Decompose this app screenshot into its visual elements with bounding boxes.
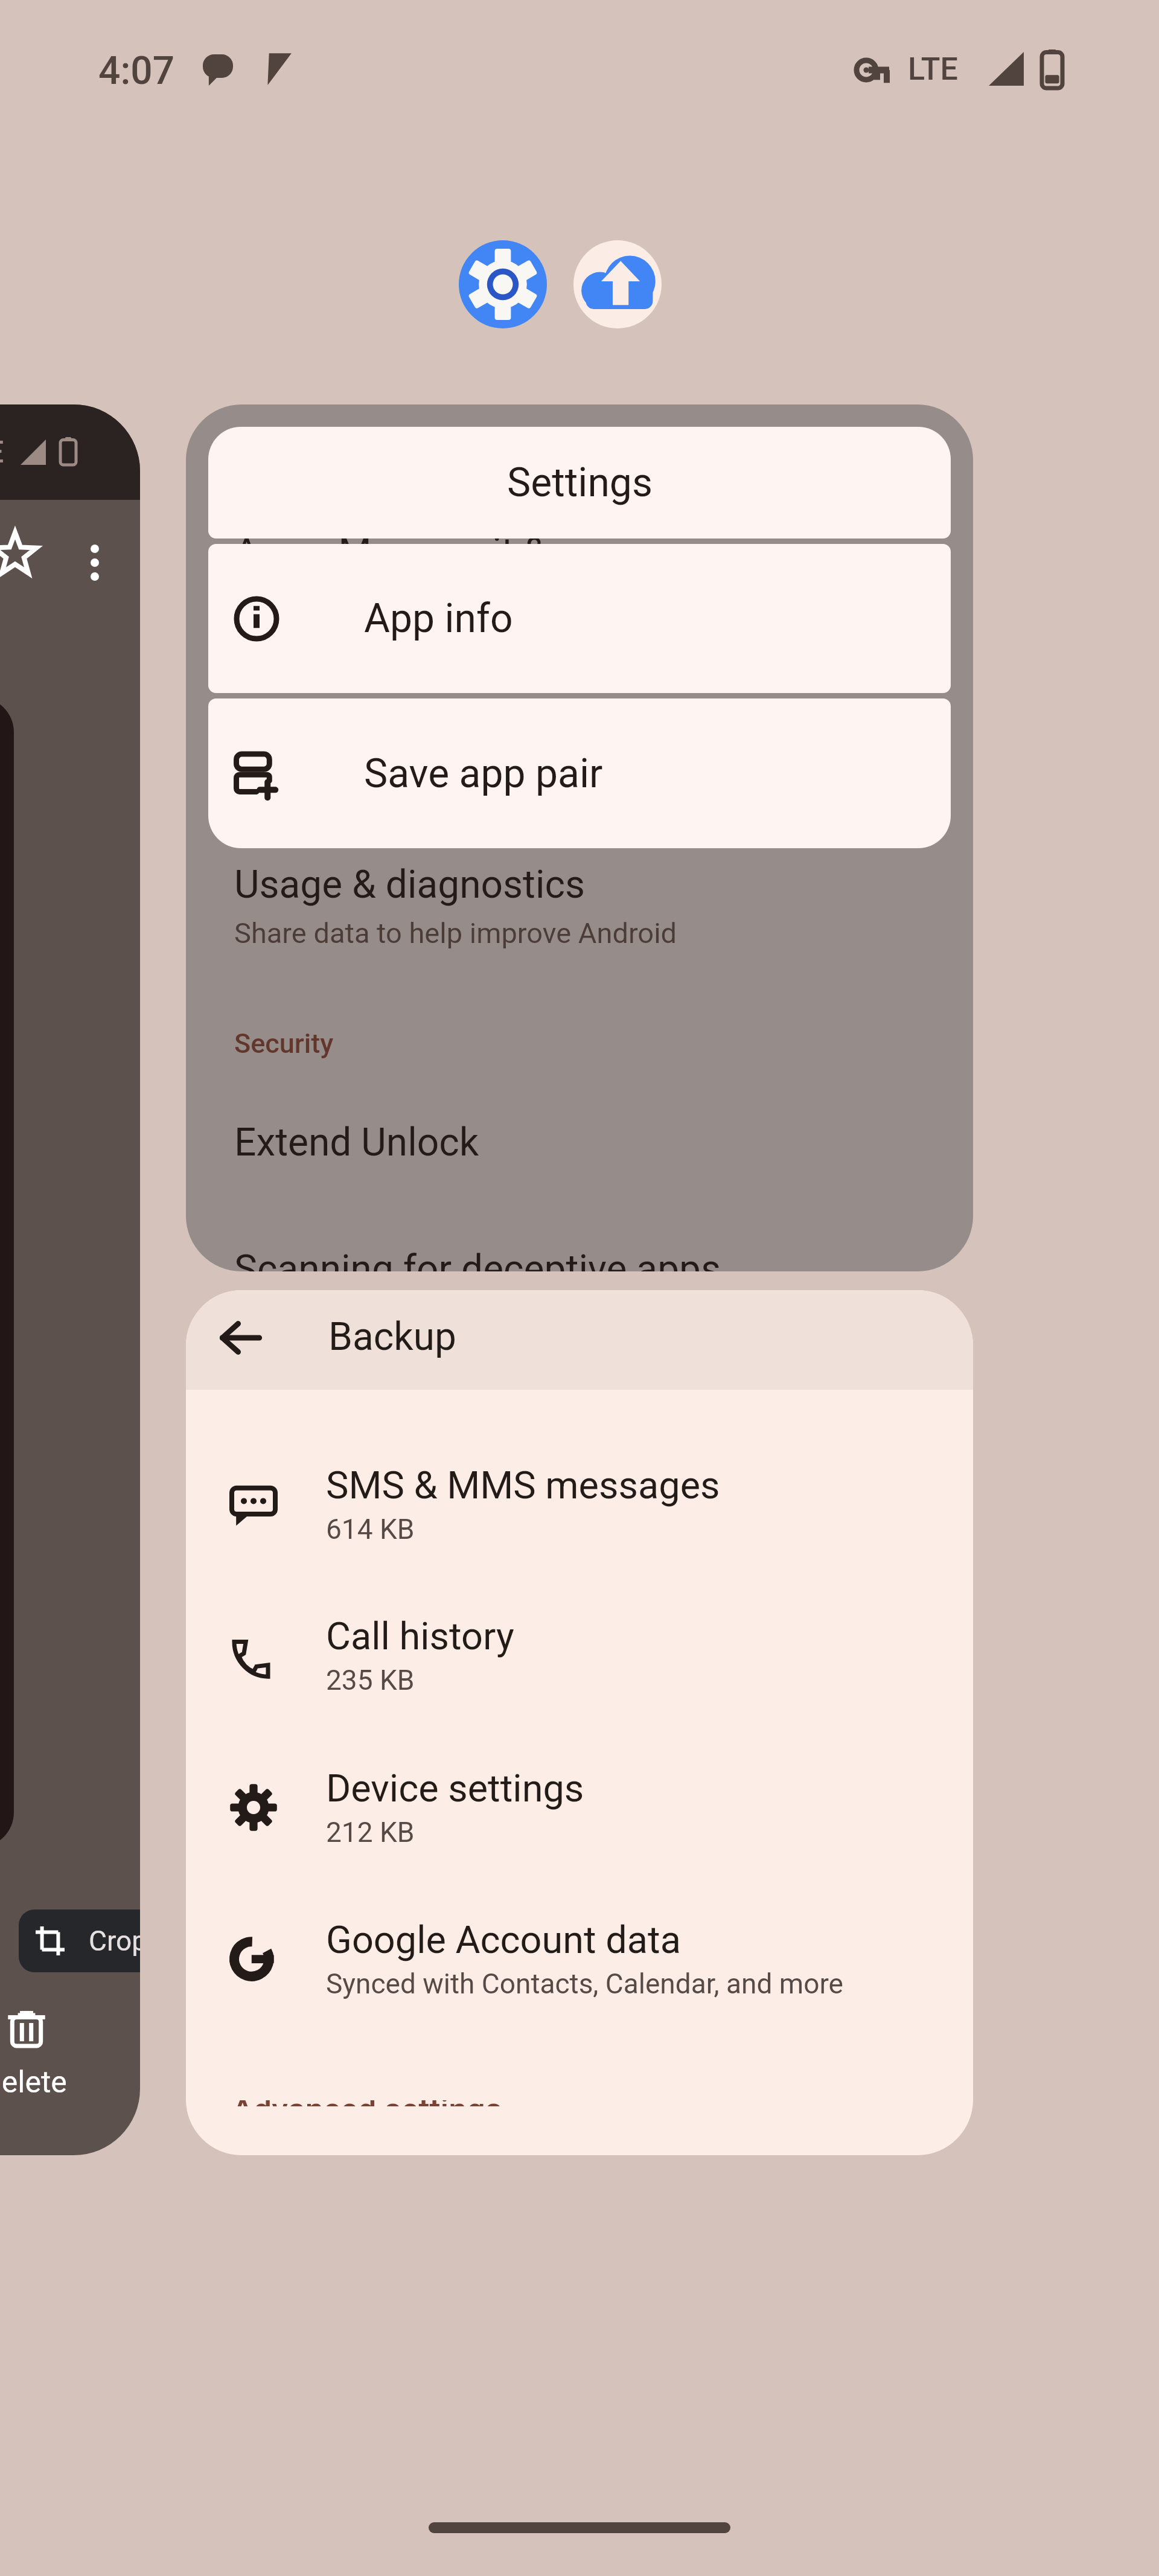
staticText: 212 KB bbox=[326, 1816, 415, 1849]
button[interactable]: SMS & MMS messages bbox=[186, 1441, 973, 1568]
staticText: Advanced settings bbox=[232, 2100, 502, 2106]
staticText: Google Account data bbox=[326, 1918, 681, 1963]
staticText: Extend Unlock bbox=[234, 1120, 479, 1165]
staticText: 614 KB bbox=[326, 1513, 415, 1545]
staticText: Usage & diagnostics bbox=[234, 862, 586, 907]
button[interactable]: Crop bbox=[19, 1910, 140, 1972]
button[interactable]: App info bbox=[208, 544, 951, 693]
staticText: Synced with Contacts, Calendar, and more bbox=[326, 1967, 843, 2000]
button[interactable]: Settings bbox=[208, 427, 951, 539]
staticText: Settings bbox=[507, 459, 653, 506]
button[interactable]: Call history bbox=[186, 1592, 973, 1719]
staticText: Call history bbox=[326, 1614, 514, 1659]
staticText: Save app pair bbox=[364, 750, 603, 797]
staticText: Delete bbox=[0, 2065, 67, 2100]
button[interactable]: Backup app bbox=[573, 240, 662, 328]
staticText: E bbox=[0, 435, 4, 470]
staticText: Scanning for deceptive apps bbox=[234, 1247, 721, 1271]
button[interactable]: E bbox=[0, 404, 140, 2155]
staticText: Backup bbox=[328, 1314, 456, 1360]
staticText: App info bbox=[364, 595, 513, 642]
staticText: Security bbox=[234, 1028, 334, 1059]
staticText: Crop bbox=[89, 1925, 140, 1957]
staticText: 4:07 bbox=[98, 48, 174, 94]
button[interactable]: Save app pair bbox=[208, 698, 951, 848]
staticText: 235 KB bbox=[326, 1664, 415, 1696]
staticText: Apps, Manage, it & s bbox=[234, 529, 576, 574]
button[interactable]: Device settings bbox=[186, 1744, 973, 1871]
staticText: LTE bbox=[908, 51, 958, 88]
button[interactable]: Settings app bbox=[459, 240, 547, 328]
button[interactable]: Back bbox=[214, 1311, 268, 1365]
staticText: SMS & MMS messages bbox=[326, 1463, 720, 1508]
button[interactable]: Google Account data bbox=[186, 1896, 973, 2022]
staticText: Share data to help improve Android bbox=[234, 916, 677, 950]
staticText: Device settings bbox=[326, 1766, 584, 1811]
